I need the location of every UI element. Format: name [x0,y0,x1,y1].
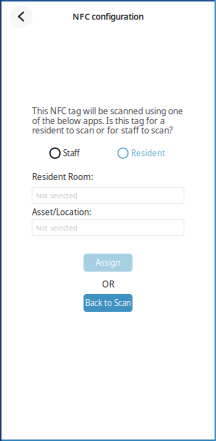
button[interactable]: Staff [50,148,80,159]
button[interactable]: Back [8,3,35,30]
button[interactable]: Not selected [32,187,184,203]
button[interactable]: Back to Scan [83,294,132,312]
staticText: OR [102,278,114,290]
staticText: NFC configuration [72,11,143,22]
button[interactable]: Assign [83,254,132,272]
button[interactable]: Resident [118,148,165,159]
staticText: Asset/Location: [32,206,91,218]
staticText: Assign [95,257,120,268]
staticText: Staff [63,148,80,159]
staticText: Resident [131,148,165,159]
button[interactable]: Not selected [32,220,184,236]
staticText: Not selected [36,223,77,232]
staticText: Not selected [36,191,77,200]
staticText: This NFC tag will be scanned using one o… [32,105,183,136]
staticText: Resident Room: [32,171,93,182]
staticText: Back to Scan [85,297,131,308]
